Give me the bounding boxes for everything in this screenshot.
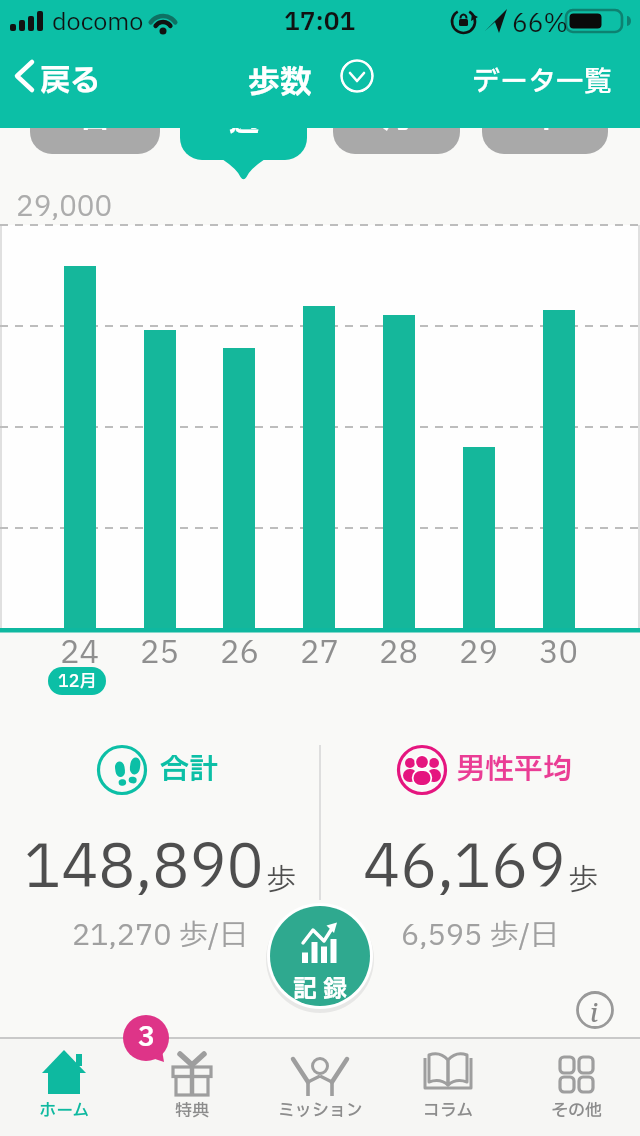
button[interactable] — [340, 59, 374, 93]
staticText: 特典 — [175, 1098, 209, 1123]
staticText: 66% — [512, 6, 568, 43]
staticText: 歩数 — [248, 59, 313, 103]
staticText: 歩 — [568, 858, 598, 903]
staticText: 29,000 — [16, 186, 113, 228]
staticText: 148,890 — [24, 824, 264, 912]
button[interactable]: 記 録 — [270, 906, 370, 1006]
staticText: 46,169 — [363, 824, 566, 912]
staticText: 年 — [530, 96, 560, 141]
staticText: 21,270 歩/日 — [72, 914, 249, 957]
staticText: docomo — [52, 5, 144, 41]
staticText: 歩 — [266, 858, 296, 903]
staticText: データ一覧 — [472, 61, 613, 101]
staticText: 週 — [229, 99, 259, 144]
staticText: 日 — [80, 96, 110, 141]
button[interactable]: 日 — [30, 90, 160, 154]
button[interactable]: 週 — [180, 90, 307, 160]
staticText: その他 — [551, 1098, 602, 1123]
button[interactable]: ホーム — [0, 1039, 128, 1136]
staticText: 30 — [539, 630, 579, 676]
staticText: 記 録 — [293, 972, 347, 1006]
button[interactable]: 戻る — [12, 56, 122, 100]
staticText: 12月 — [58, 669, 97, 694]
button[interactable]: コラム — [384, 1039, 512, 1136]
staticText: 合計 — [160, 748, 219, 791]
button[interactable]: 歩数 — [196, 56, 396, 100]
staticText: i — [590, 995, 598, 1029]
staticText: 27 — [300, 630, 340, 676]
staticText: 29 — [459, 630, 499, 676]
staticText: 6,595 歩/日 — [401, 914, 560, 957]
button[interactable]: i — [573, 988, 617, 1032]
staticText: 24 — [60, 630, 100, 676]
button[interactable]: 月 — [333, 90, 460, 154]
staticText: 28 — [379, 630, 419, 676]
staticText: ミッション — [278, 1098, 363, 1123]
staticText: 男性平均 — [456, 748, 573, 791]
button[interactable]: ミッション — [256, 1039, 384, 1136]
staticText: ホーム — [39, 1098, 90, 1123]
staticText: 3 — [138, 1017, 155, 1057]
button[interactable]: その他 — [512, 1039, 640, 1136]
staticText: 26 — [220, 630, 260, 676]
staticText: 25 — [140, 630, 180, 676]
staticText: 月 — [382, 96, 412, 141]
button[interactable]: データ一覧 — [468, 58, 630, 98]
staticText: コラム — [423, 1098, 474, 1123]
button[interactable]: 特典 — [128, 1039, 256, 1136]
button[interactable]: 年 — [482, 90, 608, 154]
staticText: 17:01 — [284, 4, 356, 41]
staticText: 戻る — [40, 59, 100, 103]
